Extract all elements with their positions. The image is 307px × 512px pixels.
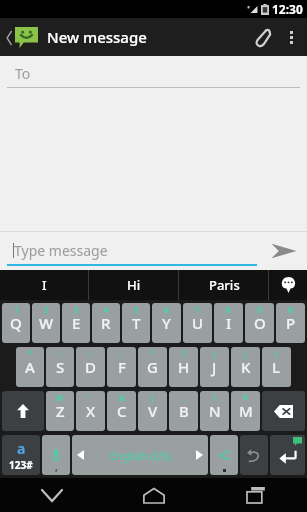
staticText: M [239,401,253,421]
staticText: @ [56,392,64,403]
button[interactable]: C [107,391,136,431]
button[interactable]: M [231,391,260,431]
staticText: To [15,64,31,83]
staticText: : [89,348,92,359]
staticText: 2 [44,304,49,315]
button[interactable]: W [32,303,60,343]
staticText: C [117,401,127,421]
button[interactable]: To [0,56,307,92]
button[interactable]: H [169,347,198,387]
button[interactable]: F [107,347,136,387]
button[interactable]: Type message [0,232,261,270]
staticText: B [179,401,189,421]
staticText: I [226,313,232,333]
button[interactable]: S [46,347,74,387]
staticText: 123# [9,458,33,472]
staticText: . [182,392,185,403]
staticText: / [213,392,217,403]
staticText: O [254,313,266,333]
button[interactable]: share [210,435,238,475]
button[interactable]: undo [240,435,268,475]
staticText: F [118,357,126,377]
button[interactable]: Y [152,303,181,343]
button[interactable]: A [16,347,44,387]
staticText: S [56,357,65,377]
staticText: - [59,348,62,359]
button[interactable]: K [231,347,260,387]
staticText: ) [244,348,247,359]
staticText: E [72,313,81,333]
button[interactable]: del [262,391,305,431]
button[interactable]: Send [261,232,307,270]
staticText: & [119,392,125,403]
button[interactable]: Hi [89,270,179,300]
staticText: Y [162,313,171,333]
button[interactable]: Z [46,391,74,431]
button[interactable]: E [62,303,90,343]
button[interactable]: mic [42,435,70,475]
button[interactable]: Up [4,27,40,48]
staticText: * [28,348,33,359]
button[interactable]: U [183,303,212,343]
staticText: U [192,313,204,333]
staticText: Z [56,401,65,421]
button[interactable]: G [138,347,167,387]
staticText: ! [275,348,278,359]
button[interactable]: I [0,270,89,300]
staticText: Q [10,313,22,333]
button[interactable]: T [122,303,150,343]
button[interactable]: O [245,303,274,343]
staticText: 0 [288,304,293,315]
staticText: R [101,313,111,333]
staticText: H [178,357,190,377]
staticText: ' [89,392,92,403]
button[interactable]: More options [279,18,303,56]
staticText: 6 [164,304,169,315]
button[interactable]: Q [2,303,30,343]
staticText: K [241,357,251,377]
staticText: $ [243,392,248,403]
button[interactable]: a [2,435,40,475]
button[interactable]: Attach [245,18,279,56]
staticText: I [42,276,47,294]
staticText: , [55,460,58,474]
button[interactable]: Home [103,478,205,512]
staticText: N [209,401,221,421]
button[interactable]: V [138,391,167,431]
staticText: 3 [74,304,79,315]
button[interactable]: X [76,391,105,431]
staticText: Paris [209,276,240,294]
button[interactable]: shift [2,391,44,431]
staticText: L [272,357,281,377]
staticText: D [85,357,96,377]
staticText: New message [47,27,147,47]
button[interactable]: N [200,391,229,431]
button[interactable]: J [200,347,229,387]
button[interactable]: P [276,303,305,343]
button[interactable]: I [214,303,243,343]
staticText: X [86,401,96,421]
button[interactable]: Paris [179,270,269,300]
staticText: ? [182,348,186,359]
staticText: T [132,313,141,333]
button[interactable]: enter [270,435,305,475]
button[interactable]: space [72,435,208,475]
staticText: 1 [14,304,19,315]
staticText: 9 [257,304,262,315]
staticText: " [151,348,155,359]
staticText: P [286,313,296,333]
staticText: ( [213,348,216,359]
staticText: G [147,357,158,377]
staticText: J [212,357,217,377]
button[interactable]: Emoji suggestions [269,270,307,300]
button[interactable]: R [92,303,120,343]
button[interactable]: Recent apps [205,478,307,512]
button[interactable]: Hide keyboard [0,478,103,512]
staticText: 12:30 [272,1,303,17]
staticText: 5 [134,304,139,315]
staticText: 8 [226,304,231,315]
staticText: Hi [127,276,141,294]
button[interactable]: L [262,347,291,387]
button[interactable]: B [169,391,198,431]
button[interactable]: D [76,347,105,387]
